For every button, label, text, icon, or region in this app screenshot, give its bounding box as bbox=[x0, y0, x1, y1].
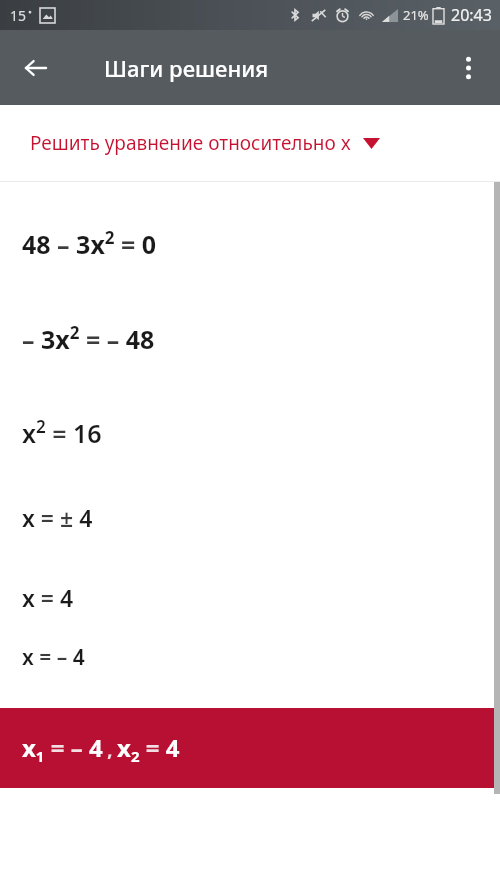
button[interactable]: More options bbox=[444, 44, 492, 92]
staticText: 20:43 bbox=[451, 4, 492, 26]
staticText: x1 = – 4 , x2 = 4 bbox=[22, 731, 180, 766]
staticText: x = 4 bbox=[22, 582, 74, 613]
staticText: 15 bbox=[10, 6, 27, 25]
staticText: Шаги решения bbox=[104, 53, 269, 83]
button[interactable]: x1 = – 4 , x2 = 4 bbox=[0, 708, 500, 788]
staticText: x2 = 16 bbox=[22, 415, 102, 450]
staticText: x = ± 4 bbox=[22, 502, 93, 533]
staticText: 21% bbox=[403, 6, 429, 24]
staticText: 48 – 3x2 = 0 bbox=[22, 226, 157, 261]
staticText: x = – 4 bbox=[22, 643, 85, 672]
staticText: – 3x2 = – 48 bbox=[22, 321, 155, 356]
button[interactable]: Решить уравнение относительно x bbox=[0, 105, 500, 180]
button[interactable]: Back bbox=[12, 44, 60, 92]
staticText: Решить уравнение относительно x bbox=[30, 130, 351, 156]
